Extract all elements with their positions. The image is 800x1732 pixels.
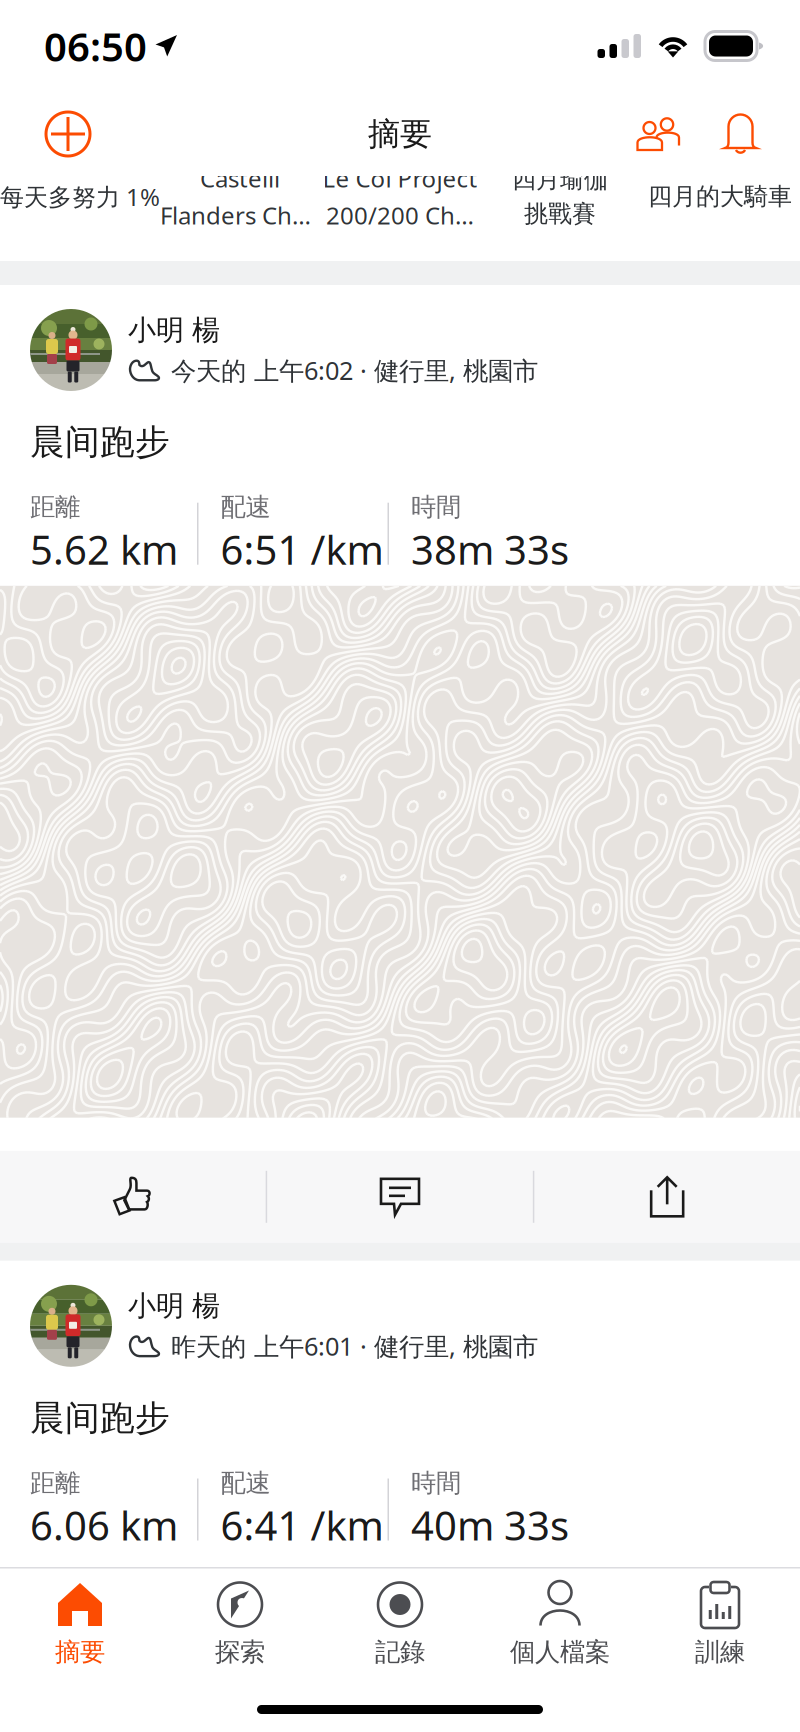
button[interactable]: 小明 楊 profile bbox=[30, 1285, 112, 1367]
staticText: 挑戰賽 bbox=[524, 199, 596, 229]
staticText: 5.62 km bbox=[30, 523, 178, 576]
staticText: 昨天的 上午6:01 · 健行里, 桃園市 bbox=[171, 1329, 538, 1363]
staticText: 探索 bbox=[215, 1636, 265, 1668]
staticText: 晨间跑步 bbox=[30, 1397, 170, 1439]
button[interactable]: Give kudos bbox=[0, 1151, 266, 1243]
staticText: 晨间跑步 bbox=[30, 421, 170, 464]
button[interactable]: Find friends bbox=[636, 116, 681, 152]
staticText: 時間 bbox=[411, 492, 461, 523]
button[interactable]: 四月瑜伽 bbox=[480, 165, 640, 229]
staticText: 6:51 /km bbox=[220, 523, 383, 576]
button[interactable]: Comment bbox=[267, 1151, 533, 1243]
staticText: 配速 bbox=[220, 492, 270, 523]
staticText: Le Col Project bbox=[322, 162, 477, 194]
staticText: 時間 bbox=[411, 1467, 461, 1498]
staticText: 40m 33s bbox=[411, 1498, 569, 1552]
button[interactable]: Share bbox=[534, 1151, 800, 1243]
staticText: 四月瑜伽 bbox=[512, 165, 608, 194]
button[interactable]: 個人檔案 bbox=[480, 1568, 640, 1676]
button[interactable]: 探索 bbox=[160, 1568, 320, 1676]
staticText: 四月的大騎車 bbox=[648, 182, 792, 211]
staticText: 摘要 bbox=[55, 1636, 105, 1668]
staticText: 距離 bbox=[30, 1467, 80, 1498]
staticText: 6:41 /km bbox=[220, 1498, 383, 1552]
staticText: 200/200 Ch… bbox=[326, 199, 474, 231]
button[interactable]: 訓練 bbox=[640, 1568, 800, 1676]
staticText: Flanders Chal… bbox=[160, 199, 320, 231]
staticText: 距離 bbox=[30, 492, 80, 523]
staticText: 訓練 bbox=[695, 1636, 745, 1668]
button[interactable]: Notifications bbox=[723, 113, 758, 155]
staticText: 小明 楊 bbox=[128, 1289, 220, 1323]
button[interactable]: Castelli bbox=[160, 162, 320, 231]
staticText: 配速 bbox=[220, 1467, 270, 1498]
staticText: 06:50 bbox=[44, 19, 147, 72]
button[interactable]: 每天多努力 1% bbox=[0, 181, 160, 213]
button[interactable]: 記錄 bbox=[320, 1568, 480, 1676]
staticText: 摘要 bbox=[368, 114, 432, 154]
button[interactable]: 四月的大騎車 bbox=[640, 182, 800, 211]
staticText: 個人檔案 bbox=[510, 1636, 610, 1668]
button[interactable]: Le Col Project bbox=[320, 162, 480, 231]
staticText: 38m 33s bbox=[411, 523, 569, 576]
staticText: 今天的 上午6:02 · 健行里, 桃園市 bbox=[171, 353, 538, 387]
staticText: Castelli bbox=[200, 162, 280, 194]
button[interactable]: 摘要 bbox=[0, 1568, 160, 1676]
button[interactable]: 小明 楊 profile bbox=[30, 309, 112, 391]
button[interactable]: Record activity bbox=[41, 107, 95, 161]
staticText: 記錄 bbox=[375, 1636, 425, 1668]
staticText: 6.06 km bbox=[30, 1498, 178, 1552]
staticText: 每天多努力 1% bbox=[0, 181, 160, 213]
staticText: 小明 楊 bbox=[128, 313, 220, 347]
